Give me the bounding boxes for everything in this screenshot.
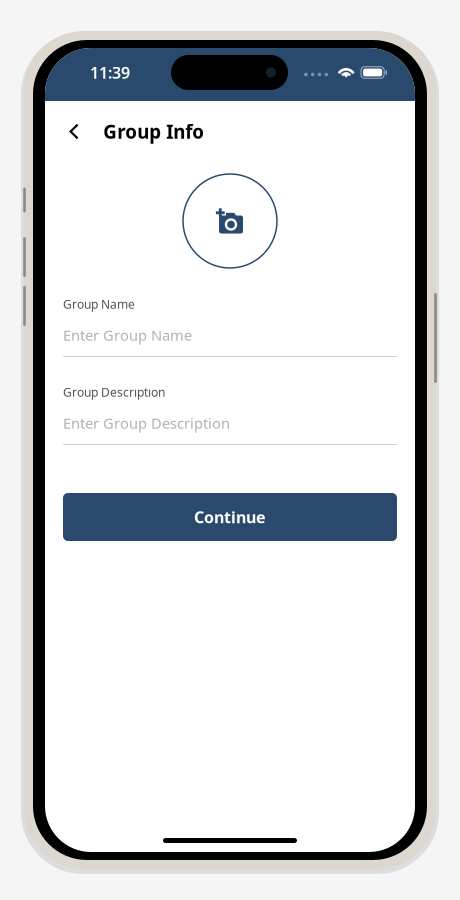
button[interactable]: Continue (63, 493, 397, 541)
staticText: Continue (194, 506, 266, 528)
staticText: Enter Group Description (63, 413, 230, 433)
staticText: Group Info (103, 119, 204, 144)
staticText: Group Name (63, 296, 135, 312)
button[interactable]: Back (59, 112, 89, 150)
staticText: Enter Group Name (63, 325, 192, 345)
staticText: 11:39 (90, 62, 130, 83)
button[interactable]: Add group photo (183, 174, 277, 268)
staticText: Group Description (63, 384, 165, 400)
